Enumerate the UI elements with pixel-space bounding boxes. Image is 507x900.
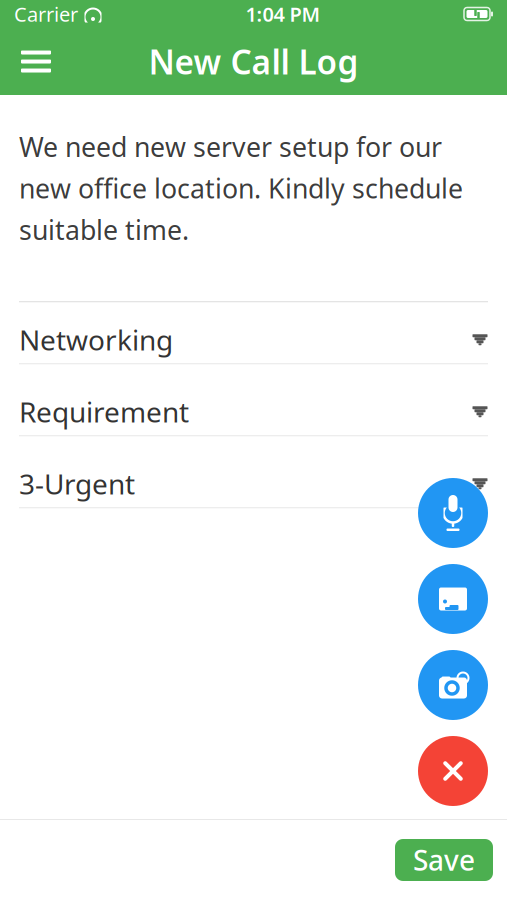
staticText: Save [413,841,475,879]
button[interactable]: 3-Urgent [0,460,507,508]
button[interactable]: Save [395,839,493,881]
staticText: 1:04 PM [245,1,320,27]
staticText: Carrier [14,1,78,27]
button[interactable]: Menu [10,35,62,87]
button[interactable]: Networking [0,316,507,364]
button[interactable]: Close [418,736,488,806]
staticText: Requirement [19,393,189,430]
button[interactable]: Choose photo [418,564,488,634]
staticText: We need new server setup for our new off… [19,129,463,247]
button[interactable]: Take photo [418,650,488,720]
button[interactable]: Record audio [418,478,488,548]
staticText: New Call Log [148,39,358,84]
button[interactable]: Requirement [0,388,507,436]
staticText: Networking [19,321,173,358]
staticText: 3-Urgent [19,465,135,502]
